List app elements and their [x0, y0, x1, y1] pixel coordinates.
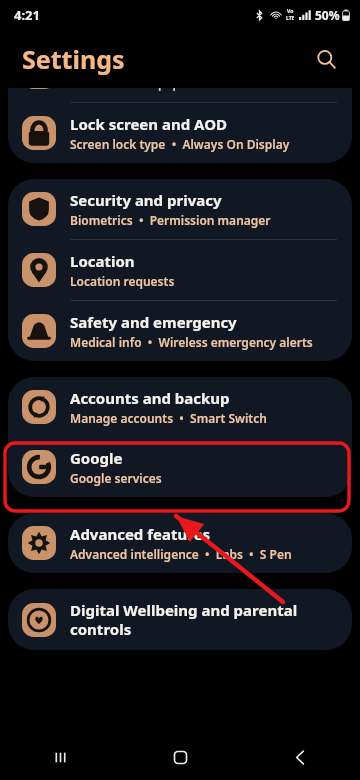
- button[interactable]: Lock screen and AOD: [8, 103, 352, 163]
- staticText: Advanced intelligence • Labs • S Pen: [70, 546, 292, 562]
- button[interactable]: Safety and emergency: [8, 301, 352, 361]
- staticText: Google: [70, 448, 123, 468]
- staticText: Themes • Wallpapers • Icons: [70, 88, 247, 91]
- staticText: Google services: [70, 470, 162, 486]
- button[interactable]: Back: [240, 735, 360, 780]
- staticText: Safety and emergency: [70, 312, 237, 332]
- button[interactable]: Security and privacy: [8, 179, 352, 239]
- staticText: Settings: [22, 42, 125, 76]
- button[interactable]: Recent apps: [0, 735, 120, 780]
- staticText: Biometrics • Permission manager: [70, 212, 271, 228]
- button[interactable]: Home: [120, 735, 240, 780]
- staticText: Advanced features: [70, 524, 211, 544]
- staticText: 4:21: [14, 6, 40, 24]
- staticText: Medical info • Wireless emergency alerts: [70, 334, 313, 350]
- button[interactable]: Search: [310, 43, 342, 75]
- staticText: Accounts and backup: [70, 388, 230, 408]
- staticText: Security and privacy: [70, 190, 222, 210]
- staticText: Location requests: [70, 273, 175, 289]
- button[interactable]: Digital Wellbeing and parental controls: [8, 589, 352, 650]
- button[interactable]: Themes: [8, 88, 352, 102]
- staticText: Manage accounts • Smart Switch: [70, 410, 267, 426]
- staticText: 50%: [315, 7, 340, 23]
- staticText: LTE: [286, 15, 295, 22]
- staticText: Lock screen and AOD: [70, 114, 227, 134]
- staticText: Vo: [287, 8, 294, 15]
- staticText: Location: [70, 251, 135, 271]
- staticText: Digital Wellbeing and parental controls: [70, 600, 338, 639]
- button[interactable]: Google: [8, 437, 352, 497]
- button[interactable]: Accounts and backup: [8, 377, 352, 437]
- staticText: Screen lock type • Always On Display: [70, 136, 290, 152]
- button[interactable]: Advanced features: [8, 513, 352, 573]
- button[interactable]: Location: [8, 240, 352, 300]
